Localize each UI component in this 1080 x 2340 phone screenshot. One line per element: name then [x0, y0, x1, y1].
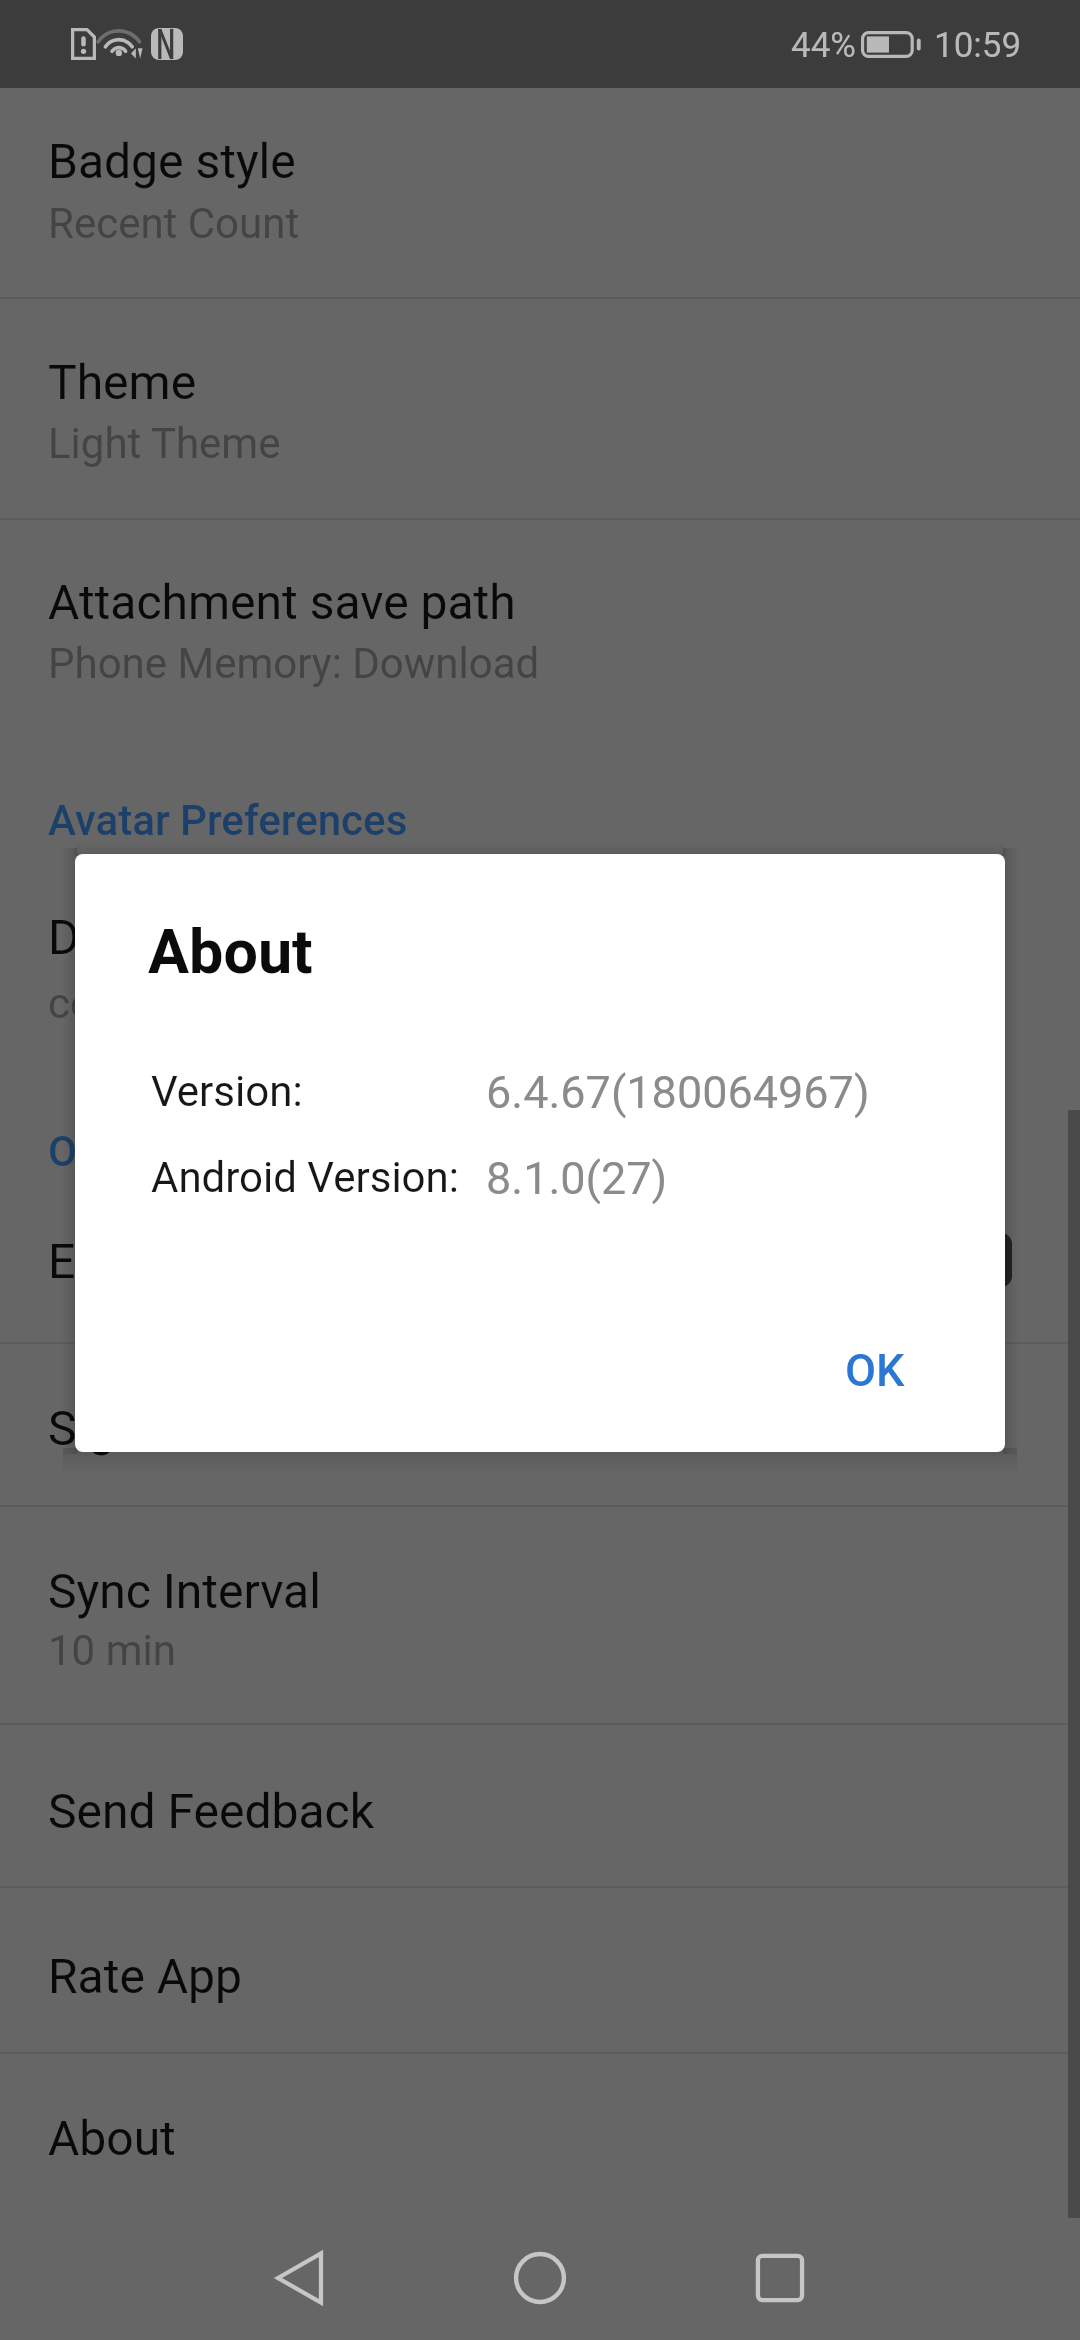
button[interactable]: OK	[782, 1315, 967, 1425]
staticText: Android Version:	[151, 1153, 459, 1202]
button[interactable]: Signature	[0, 1343, 1080, 1506]
staticText: About	[48, 2110, 176, 2166]
staticText: 10 min	[48, 1626, 176, 1675]
staticText: Version:	[151, 1067, 303, 1116]
staticText: Avatar Preferences	[48, 796, 408, 845]
button[interactable]: Theme	[0, 298, 1080, 519]
staticText: Theme	[48, 354, 197, 410]
button[interactable]: Sync Interval	[0, 1506, 1080, 1724]
button[interactable]: Send Feedback	[0, 1724, 1080, 1887]
staticText: Attachment save path	[48, 574, 516, 630]
staticText: 6.4.67(180064967)	[486, 1066, 870, 1119]
button[interactable]: About	[0, 2053, 1080, 2210]
button[interactable]: Attachment save path	[0, 519, 1080, 740]
staticText: OK	[845, 1344, 905, 1397]
button[interactable]: Enable Notifications	[0, 1175, 1080, 1343]
button[interactable]: Recents	[710, 2208, 850, 2340]
staticText: Rate App	[48, 1948, 242, 2004]
staticText: Enable Notifications	[48, 1233, 477, 1289]
button[interactable]: Home	[470, 2208, 610, 2340]
staticText: Download Avatar	[48, 909, 411, 965]
staticText: Light Theme	[48, 419, 281, 468]
button[interactable]: Download Avatar	[0, 855, 1080, 1076]
staticText: Sync Interval	[48, 1563, 321, 1619]
button[interactable]: Back	[230, 2208, 370, 2340]
staticText: 8.1.0(27)	[486, 1152, 668, 1205]
staticText: Signature	[48, 1400, 252, 1456]
button[interactable]: Badge style	[0, 88, 1080, 298]
staticText: Other Preferences	[48, 1127, 390, 1176]
staticText: Phone Memory: Download	[48, 639, 540, 688]
staticText: Send Feedback	[48, 1783, 374, 1839]
button[interactable]: Rate App	[0, 1887, 1080, 2053]
staticText: 10:59	[934, 25, 1022, 66]
staticText: 44%	[791, 25, 856, 66]
staticText: Badge style	[48, 133, 296, 189]
staticText: Recent Count	[48, 199, 300, 248]
staticText: About	[148, 916, 313, 987]
staticText: cellular and wifi	[48, 979, 339, 1028]
